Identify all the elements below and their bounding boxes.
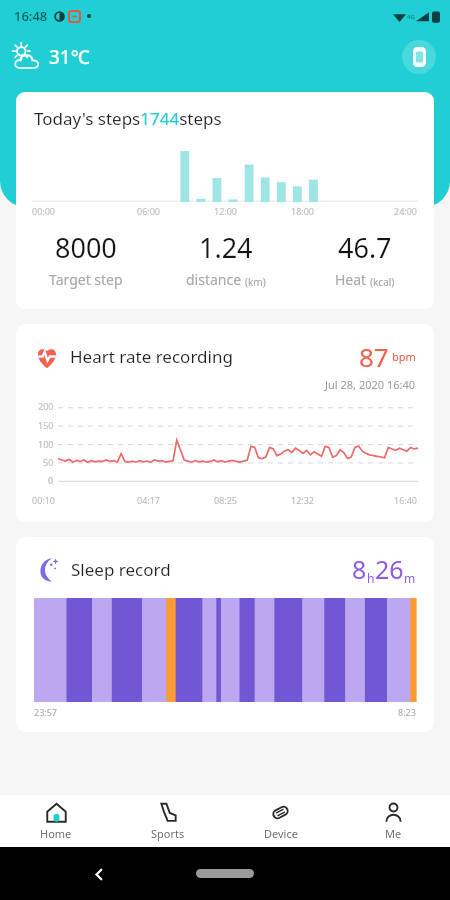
button[interactable]: Me	[337, 795, 450, 847]
button[interactable]: Heart rate recording	[16, 324, 434, 522]
staticText: 12:00	[214, 205, 238, 217]
staticText: 04:17	[137, 494, 161, 506]
button[interactable]: Back	[88, 863, 110, 885]
staticText: 16:48	[14, 7, 48, 25]
staticText: Today's steps1744steps	[34, 107, 222, 130]
staticText: 8:23	[398, 706, 416, 718]
staticText: (kcal)	[370, 275, 395, 289]
staticText: 23:57	[34, 706, 58, 718]
staticText: 150	[38, 419, 54, 431]
staticText: 24:00	[394, 205, 418, 217]
button[interactable]: Today's steps1744steps	[16, 92, 434, 309]
staticText: 12:32	[291, 494, 315, 506]
staticText: 8	[352, 552, 367, 586]
staticText: 0	[48, 474, 54, 486]
staticText: 100	[38, 438, 54, 450]
button[interactable]: Home	[0, 795, 112, 847]
staticText: 87	[359, 339, 389, 374]
staticText: Home	[40, 826, 72, 841]
staticText: 26	[375, 552, 404, 586]
staticText: Heat	[335, 270, 367, 289]
staticText: Jul 28, 2020 16:40	[325, 377, 416, 392]
staticText: (km)	[245, 275, 266, 289]
staticText: 06:00	[137, 205, 161, 217]
staticText: 8000	[55, 229, 117, 266]
staticText: 1.24	[199, 229, 253, 266]
staticText: 00:10	[32, 494, 56, 506]
staticText: Target step	[49, 270, 123, 289]
staticText: h	[367, 570, 375, 586]
staticText: m	[404, 570, 416, 586]
staticText: Device	[264, 826, 298, 841]
button[interactable]: Sleep record	[16, 537, 434, 732]
button[interactable]: Sports	[112, 795, 224, 847]
staticText: distance	[186, 270, 242, 289]
staticText: 46.7	[338, 229, 392, 266]
button[interactable]: Home gesture	[196, 869, 254, 878]
staticText: Sleep record	[71, 558, 171, 581]
staticText: 31℃	[49, 44, 90, 70]
staticText: 08:25	[214, 494, 238, 506]
staticText: 18:00	[291, 205, 315, 217]
staticText: Me	[385, 826, 402, 841]
staticText: bpm	[392, 349, 416, 364]
staticText: 200	[38, 400, 54, 412]
button[interactable]: My device	[402, 40, 436, 74]
button[interactable]: Device	[224, 795, 337, 847]
staticText: 00:00	[32, 205, 56, 217]
staticText: 4G	[407, 13, 415, 21]
staticText: Heart rate recording	[70, 345, 233, 368]
staticText: 16:40	[394, 494, 418, 506]
staticText: Sports	[151, 826, 185, 841]
staticText: 50	[43, 456, 54, 468]
